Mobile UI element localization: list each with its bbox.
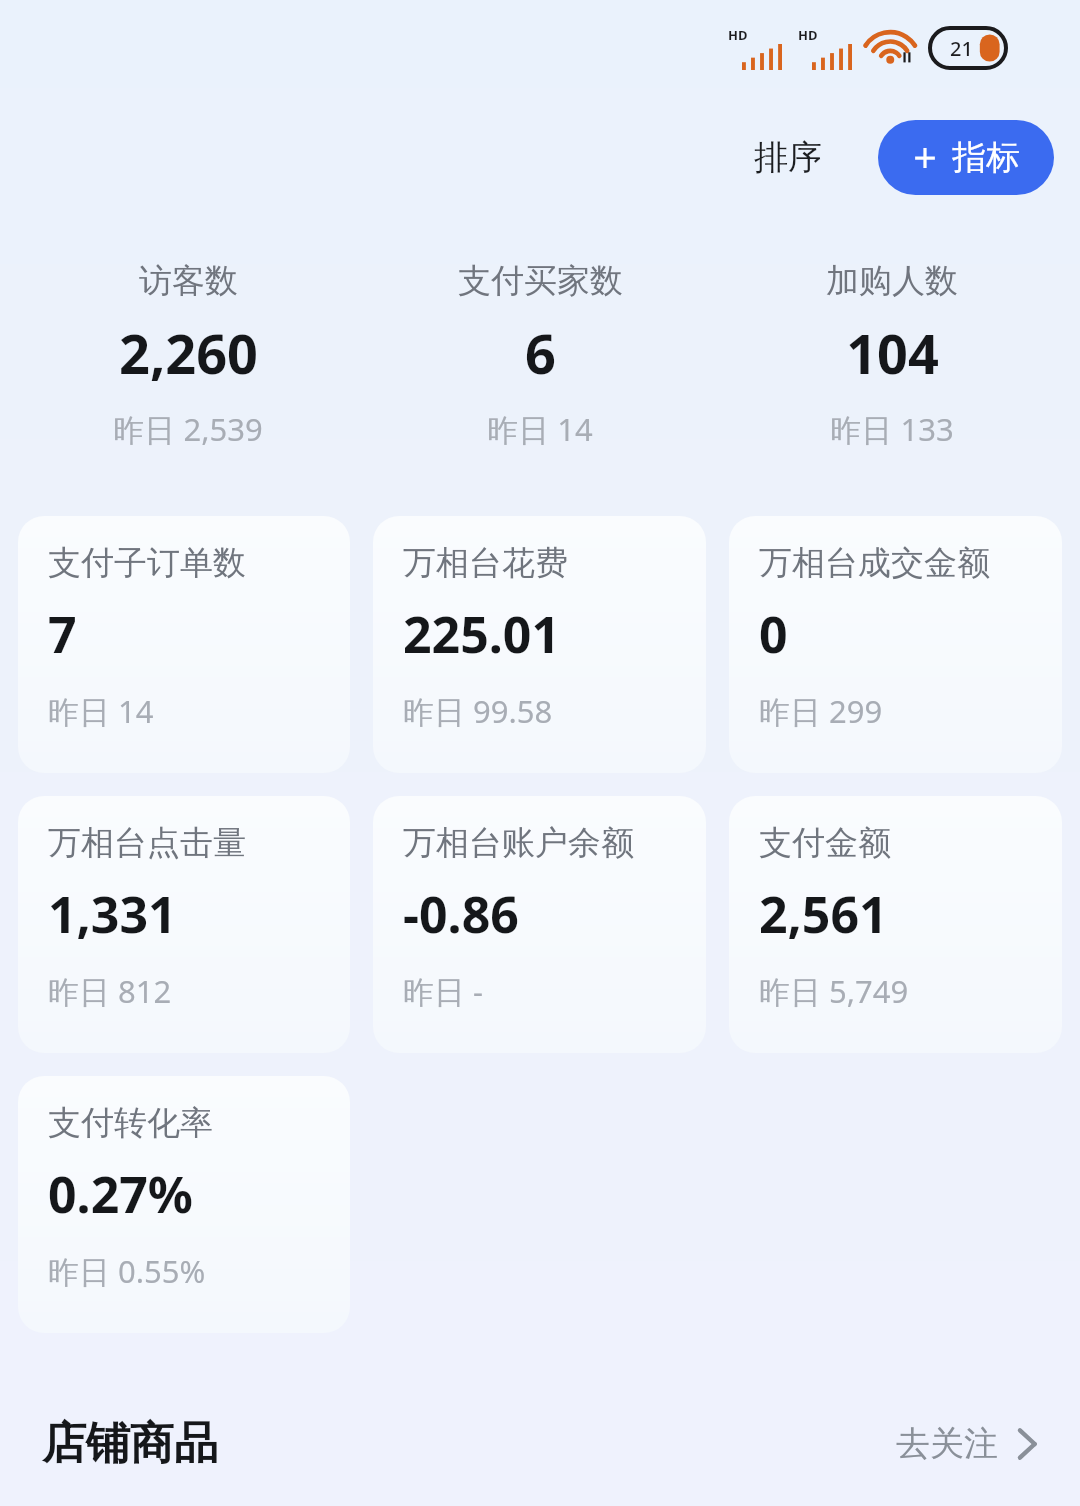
staticText: 1,331: [48, 880, 177, 948]
button[interactable]: 店铺商品: [42, 1416, 218, 1471]
staticText: 0: [759, 600, 788, 668]
staticText: 昨日 2,539: [113, 408, 263, 450]
staticText: 支付买家数: [458, 260, 623, 302]
staticText: 昨日 299: [759, 690, 883, 732]
button[interactable]: 排序: [744, 128, 832, 187]
button[interactable]: 支付转化率: [18, 1076, 350, 1333]
staticText: 2,561: [759, 880, 888, 948]
button[interactable]: 万相台成交金额: [729, 516, 1062, 773]
button[interactable]: 访客数: [12, 256, 364, 454]
staticText: 支付子订单数: [48, 542, 246, 584]
staticText: 6: [525, 316, 556, 390]
staticText: 昨日 99.58: [403, 690, 553, 732]
staticText: 去关注: [896, 1422, 998, 1465]
staticText: 万相台点击量: [48, 822, 246, 864]
staticText: 昨日 14: [487, 408, 593, 450]
staticText: 225.01: [403, 600, 561, 668]
staticText: 万相台成交金额: [759, 542, 990, 584]
button[interactable]: 加购人数: [716, 256, 1068, 454]
staticText: 2,260: [119, 316, 258, 390]
staticText: 昨日 14: [48, 690, 154, 732]
button[interactable]: 万相台点击量: [18, 796, 350, 1053]
button[interactable]: 万相台账户余额: [373, 796, 706, 1053]
staticText: 昨日 0.55%: [48, 1250, 206, 1292]
button[interactable]: 支付金额: [729, 796, 1062, 1053]
staticText: 访客数: [139, 260, 238, 302]
staticText: 昨日 5,749: [759, 970, 909, 1012]
staticText: 7: [48, 600, 77, 668]
staticText: 昨日 133: [830, 408, 954, 450]
button[interactable]: 指标: [878, 120, 1054, 195]
staticText: 0.27%: [48, 1160, 193, 1228]
button[interactable]: 万相台花费: [373, 516, 706, 773]
button[interactable]: 去关注: [888, 1414, 1046, 1473]
staticText: 排序: [754, 136, 822, 179]
button[interactable]: 支付买家数: [364, 256, 716, 454]
staticText: 21: [950, 35, 973, 62]
button[interactable]: 支付子订单数: [18, 516, 350, 773]
staticText: 昨日 812: [48, 970, 172, 1012]
staticText: 104: [846, 316, 939, 390]
staticText: 加购人数: [826, 260, 958, 302]
staticText: HD: [798, 26, 818, 44]
staticText: 万相台账户余额: [403, 822, 634, 864]
staticText: 支付金额: [759, 822, 891, 864]
staticText: -0.86: [403, 880, 519, 948]
staticText: 指标: [952, 136, 1020, 179]
staticText: 万相台花费: [403, 542, 568, 584]
staticText: 支付转化率: [48, 1102, 213, 1144]
staticText: HD: [728, 26, 748, 44]
staticText: 昨日 -: [403, 970, 484, 1012]
